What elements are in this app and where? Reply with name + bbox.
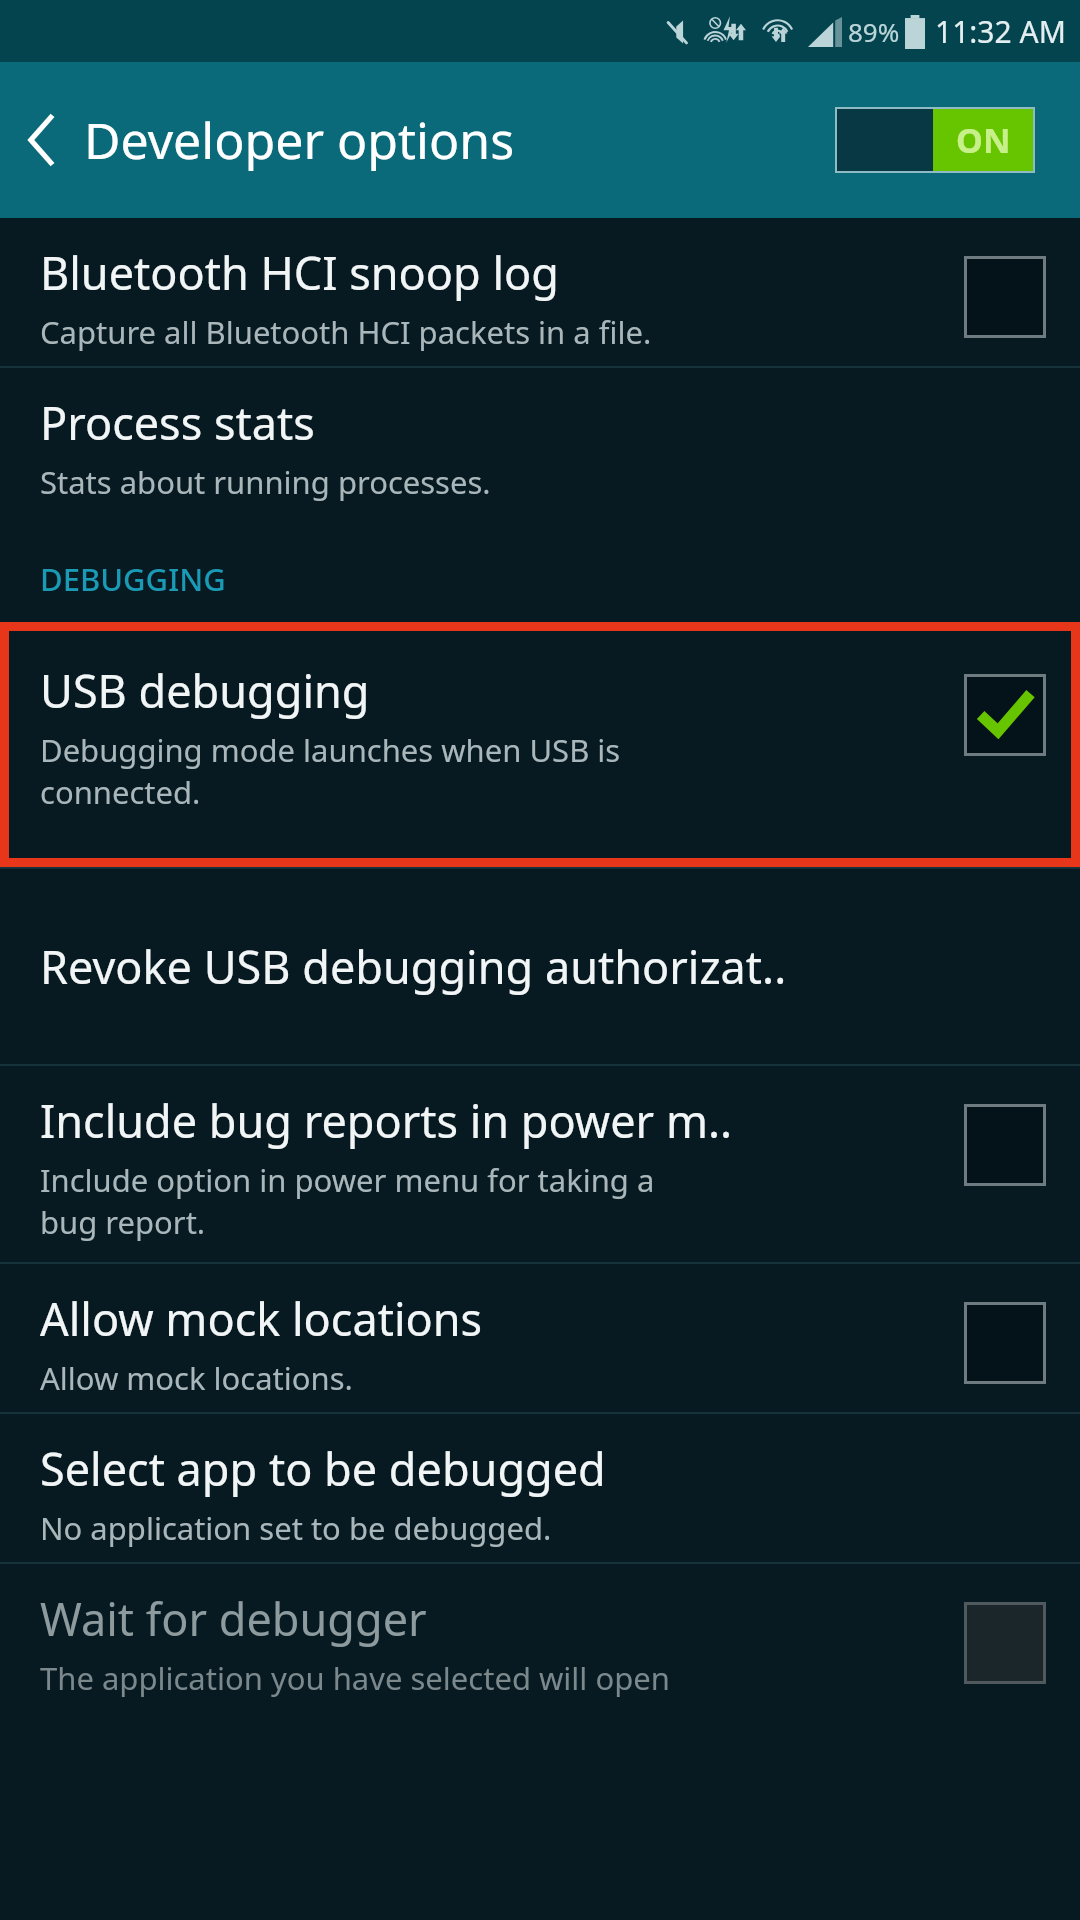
button[interactable]: Allow mock locations — [0, 1264, 1080, 1412]
button[interactable]: Back — [22, 62, 835, 218]
other: Back — [22, 113, 62, 167]
button[interactable]: Toggle checkbox — [964, 256, 1046, 338]
staticText: Select app to be debugged — [40, 1438, 606, 1499]
staticText: Wait for debugger — [40, 1588, 427, 1649]
button[interactable]: Revoke USB debugging authorizat.. — [0, 869, 1080, 1064]
staticText: DEBUGGING — [40, 558, 226, 600]
staticText: Bluetooth HCI snoop log — [40, 242, 559, 303]
staticText: Allow mock locations. — [40, 1357, 353, 1399]
staticText: 89% — [848, 14, 900, 49]
button[interactable]: Wait for debugger — [0, 1564, 1080, 1724]
button[interactable]: Toggle checkbox — [964, 1602, 1046, 1684]
staticText: Revoke USB debugging authorizat.. — [40, 936, 787, 997]
staticText: No application set to be debugged. — [40, 1507, 552, 1549]
staticText: USB debugging — [40, 660, 370, 721]
button[interactable]: Process stats — [0, 368, 1080, 516]
staticText: Debugging mode launches when USB is conn… — [40, 729, 621, 813]
staticText: ON — [956, 117, 1011, 163]
staticText: Process stats — [40, 392, 315, 453]
staticText: Developer options — [84, 106, 515, 174]
button[interactable]: Toggle checkbox — [964, 1104, 1046, 1186]
button[interactable]: Toggle checkbox — [964, 674, 1046, 756]
button[interactable]: Select app to be debugged — [0, 1414, 1080, 1562]
button[interactable]: Developer options on — [835, 107, 1035, 173]
staticText: Allow mock locations — [40, 1288, 483, 1349]
staticText: Include bug reports in power m.. — [40, 1090, 733, 1151]
button[interactable]: Bluetooth HCI snoop log — [0, 218, 1080, 366]
staticText: The application you have selected will o… — [40, 1657, 670, 1699]
staticText: Include option in power menu for taking … — [40, 1159, 655, 1243]
button[interactable]: Toggle checkbox — [964, 1302, 1046, 1384]
button[interactable]: Include bug reports in power m.. — [0, 1066, 1080, 1262]
staticText: Capture all Bluetooth HCI packets in a f… — [40, 311, 652, 353]
staticText: 11:32 AM — [935, 11, 1066, 52]
staticText: Stats about running processes. — [40, 461, 491, 503]
